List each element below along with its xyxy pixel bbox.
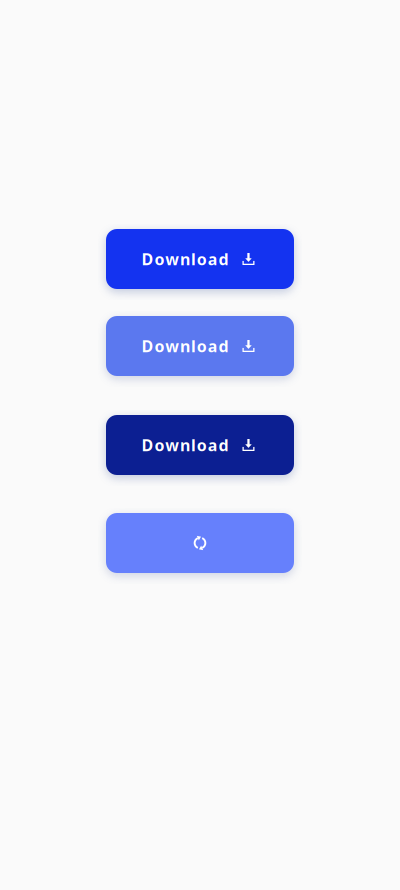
button[interactable]: Downloading: [106, 513, 294, 573]
staticText: d: [218, 335, 228, 357]
staticText: o: [154, 434, 164, 456]
staticText: a: [208, 248, 218, 270]
staticText: n: [180, 248, 190, 270]
staticText: o: [197, 434, 207, 456]
staticText: o: [154, 248, 164, 270]
staticText: l: [191, 248, 196, 270]
staticText: l: [191, 335, 196, 357]
staticText: D: [141, 434, 153, 456]
staticText: D: [141, 335, 153, 357]
staticText: D: [141, 248, 153, 270]
staticText: o: [154, 335, 164, 357]
staticText: w: [165, 248, 179, 270]
button[interactable]: Download: [106, 229, 294, 289]
staticText: o: [197, 335, 207, 357]
staticText: l: [191, 434, 196, 456]
button[interactable]: Download: [106, 316, 294, 376]
staticText: n: [180, 335, 190, 357]
staticText: o: [197, 248, 207, 270]
staticText: a: [208, 335, 218, 357]
button[interactable]: Download: [106, 415, 294, 475]
staticText: w: [165, 434, 179, 456]
staticText: a: [208, 434, 218, 456]
staticText: d: [218, 248, 228, 270]
staticText: w: [165, 335, 179, 357]
staticText: d: [218, 434, 228, 456]
staticText: n: [180, 434, 190, 456]
